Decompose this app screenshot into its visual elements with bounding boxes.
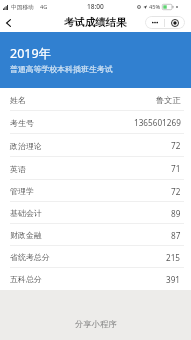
staticText: 中国移动 xyxy=(11,4,34,11)
button[interactable]: 返回 xyxy=(2,16,15,29)
staticText: 72 xyxy=(171,140,181,151)
staticText: 政治理论 xyxy=(10,141,42,151)
staticText: 4G xyxy=(40,3,48,11)
staticText: 72 xyxy=(171,186,181,197)
staticText: 财政金融 xyxy=(10,230,42,240)
staticText: 87 xyxy=(171,230,181,241)
staticText: 考生号 xyxy=(10,118,34,128)
button[interactable]: 五科总分 xyxy=(0,268,191,290)
staticText: 省统考总分 xyxy=(10,252,50,262)
staticText: 基础会计 xyxy=(10,208,42,218)
staticText: 89 xyxy=(171,208,181,219)
staticText: 71 xyxy=(171,163,181,174)
button[interactable]: 英语 xyxy=(0,157,191,180)
staticText: 英语 xyxy=(10,164,26,174)
button[interactable]: 更多 xyxy=(145,16,164,29)
staticText: 考试成绩结果 xyxy=(64,16,127,29)
staticText: 391 xyxy=(166,274,181,285)
button[interactable]: 姓名 xyxy=(0,88,191,111)
button[interactable]: 考生号 xyxy=(0,111,191,134)
button[interactable]: 管理学 xyxy=(0,180,191,202)
staticText: 215 xyxy=(166,252,181,263)
button[interactable]: 财政金融 xyxy=(0,224,191,246)
staticText: 1365601269 xyxy=(134,117,181,128)
button[interactable]: 分享小程序 xyxy=(0,316,191,332)
button[interactable]: 省统考总分 xyxy=(0,246,191,268)
staticText: 鲁文正 xyxy=(156,95,181,105)
button[interactable]: 基础会计 xyxy=(0,202,191,224)
staticText: 分享小程序 xyxy=(75,319,117,329)
staticText: 管理学 xyxy=(10,186,34,196)
staticText: 18:00 xyxy=(87,2,104,11)
staticText: 姓名 xyxy=(10,95,26,105)
staticText: 五科总分 xyxy=(10,274,42,284)
button[interactable]: 关闭 xyxy=(165,16,185,29)
button[interactable]: 政治理论 xyxy=(0,134,191,157)
staticText: 45% xyxy=(149,3,161,11)
staticText: 普通高等学校本科插班生考试 xyxy=(10,64,113,74)
staticText: 2019年 xyxy=(10,45,52,62)
